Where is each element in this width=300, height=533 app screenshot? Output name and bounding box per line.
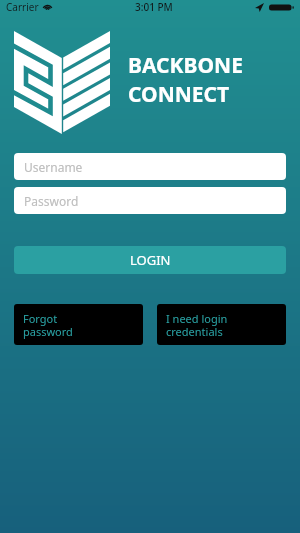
staticText: LOGIN — [130, 251, 171, 269]
button[interactable]: I need login credentials — [157, 304, 286, 345]
staticText: I need login credentials — [166, 311, 228, 339]
staticText: BACKBONE — [128, 51, 243, 80]
staticText: Username — [24, 159, 83, 175]
button[interactable]: Username — [14, 153, 286, 180]
button[interactable]: Password — [14, 187, 286, 214]
button[interactable]: Forgot password — [14, 304, 143, 345]
staticText: Forgot password — [23, 311, 73, 339]
staticText: 3:01 PM — [135, 0, 173, 14]
staticText: Carrier — [6, 0, 39, 14]
button[interactable]: LOGIN — [14, 246, 286, 274]
staticText: CONNECT — [128, 80, 230, 109]
staticText: Password — [24, 193, 79, 209]
